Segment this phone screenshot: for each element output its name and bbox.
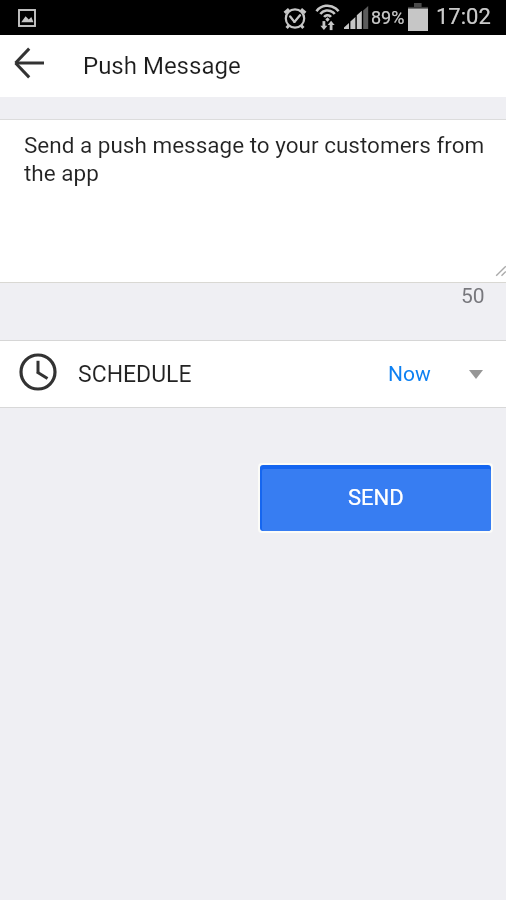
- staticText: Now: [388, 362, 431, 387]
- button[interactable]: SCHEDULE: [0, 341, 506, 408]
- other: Screenshot: [18, 9, 36, 27]
- button[interactable]: Back: [2, 36, 56, 90]
- button[interactable]: SEND: [260, 465, 491, 531]
- staticText: 89%: [371, 7, 405, 28]
- staticText: Push Message: [83, 52, 241, 80]
- staticText: 50: [461, 284, 485, 309]
- staticText: SEND: [348, 485, 404, 511]
- staticText: Send a push message to your customers fr…: [24, 132, 494, 187]
- staticText: SCHEDULE: [78, 361, 192, 388]
- staticText: 17:02: [436, 4, 491, 30]
